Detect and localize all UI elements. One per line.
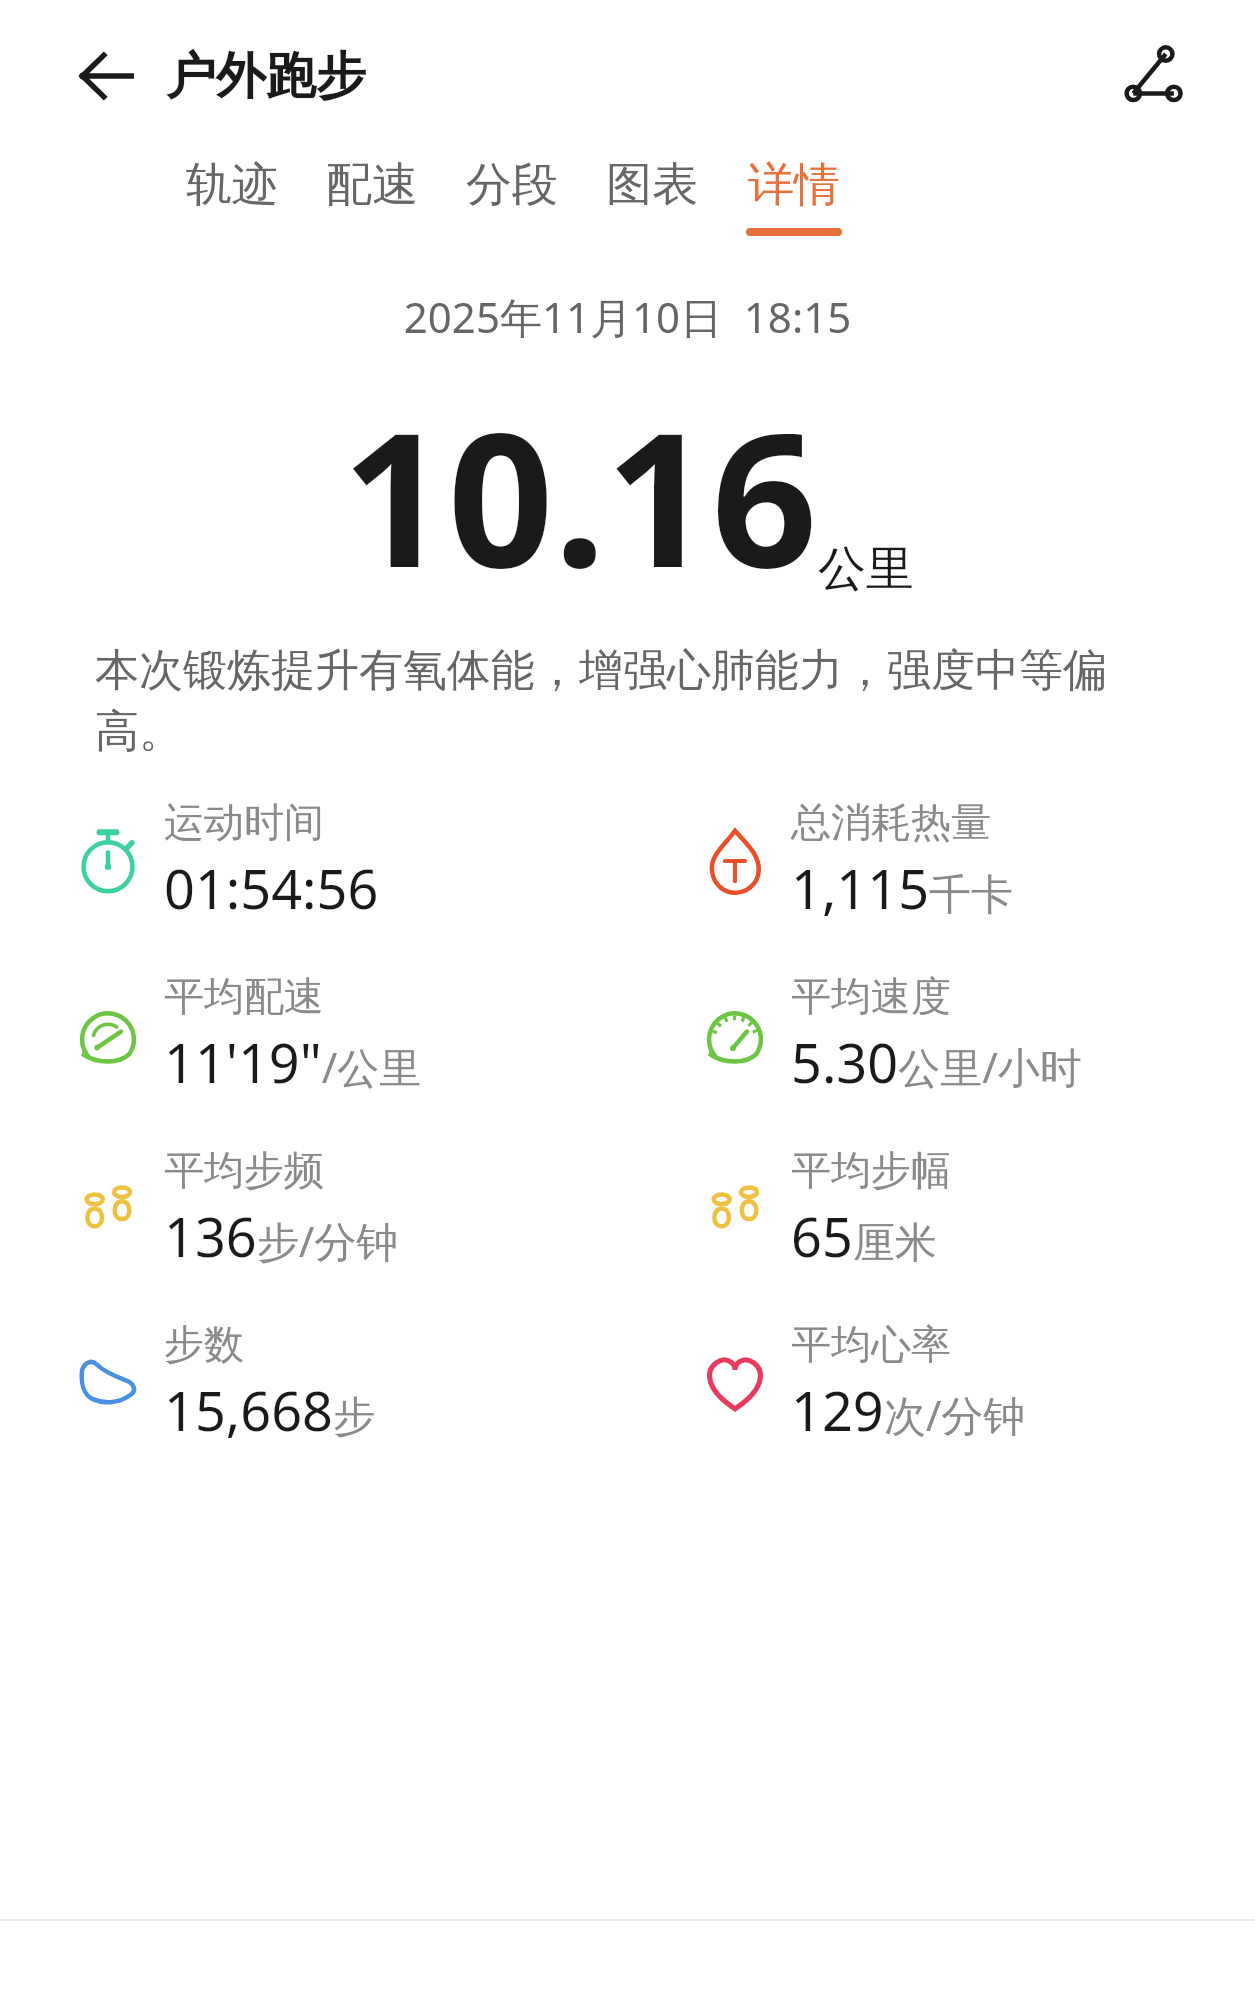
button[interactable]: 总消耗热量 <box>627 793 1255 929</box>
button[interactable]: 步数 <box>0 1315 627 1451</box>
staticText: 5.30公里/小时 <box>791 1025 1082 1099</box>
staticText: 步数 <box>164 1319 244 1369</box>
staticText: 户外跑步 <box>166 45 366 108</box>
staticText: 平均速度 <box>791 971 951 1021</box>
staticText: 15,668步 <box>164 1373 375 1447</box>
staticText: 01:54:56 <box>164 851 379 925</box>
staticText: 详情 <box>748 156 840 214</box>
button[interactable]: Share <box>1103 26 1203 126</box>
staticText: 1,115千卡 <box>791 851 1014 925</box>
button[interactable]: 平均心率 <box>627 1315 1255 1451</box>
staticText: 轨迹 <box>186 156 278 214</box>
staticText: 2025年11月10日 18:15 <box>0 288 1255 345</box>
button[interactable]: Back <box>56 26 156 126</box>
staticText: 129次/分钟 <box>791 1373 1026 1447</box>
button[interactable]: 运动时间 <box>0 793 627 929</box>
staticText: 分段 <box>466 156 558 214</box>
staticText: 65厘米 <box>791 1199 937 1273</box>
staticText: 平均配速 <box>164 971 324 1021</box>
staticText: 配速 <box>326 156 418 214</box>
button[interactable]: 平均速度 <box>627 967 1255 1103</box>
staticText: 10.16 <box>342 369 818 621</box>
button[interactable]: 平均步幅 <box>627 1141 1255 1277</box>
staticText: 图表 <box>606 156 698 214</box>
button[interactable]: 平均配速 <box>0 967 627 1103</box>
staticText: 本次锻炼提升有氧体能，增强心肺能力，强度中等偏高。 <box>95 643 1160 759</box>
button[interactable]: 详情 <box>740 152 848 240</box>
staticText: 运动时间 <box>164 797 324 847</box>
button[interactable]: 配速 <box>320 152 424 232</box>
staticText: 平均心率 <box>791 1319 951 1369</box>
staticText: 11'19"/公里 <box>164 1025 422 1099</box>
staticText: 136步/分钟 <box>164 1199 399 1273</box>
button[interactable]: 轨迹 <box>180 152 284 232</box>
staticText: 总消耗热量 <box>791 797 991 847</box>
staticText: 公里 <box>818 539 914 599</box>
button[interactable]: 平均步频 <box>0 1141 627 1277</box>
staticText: 平均步频 <box>164 1145 324 1195</box>
staticText: 平均步幅 <box>791 1145 951 1195</box>
button[interactable]: 图表 <box>600 152 704 232</box>
button[interactable]: 分段 <box>460 152 564 232</box>
